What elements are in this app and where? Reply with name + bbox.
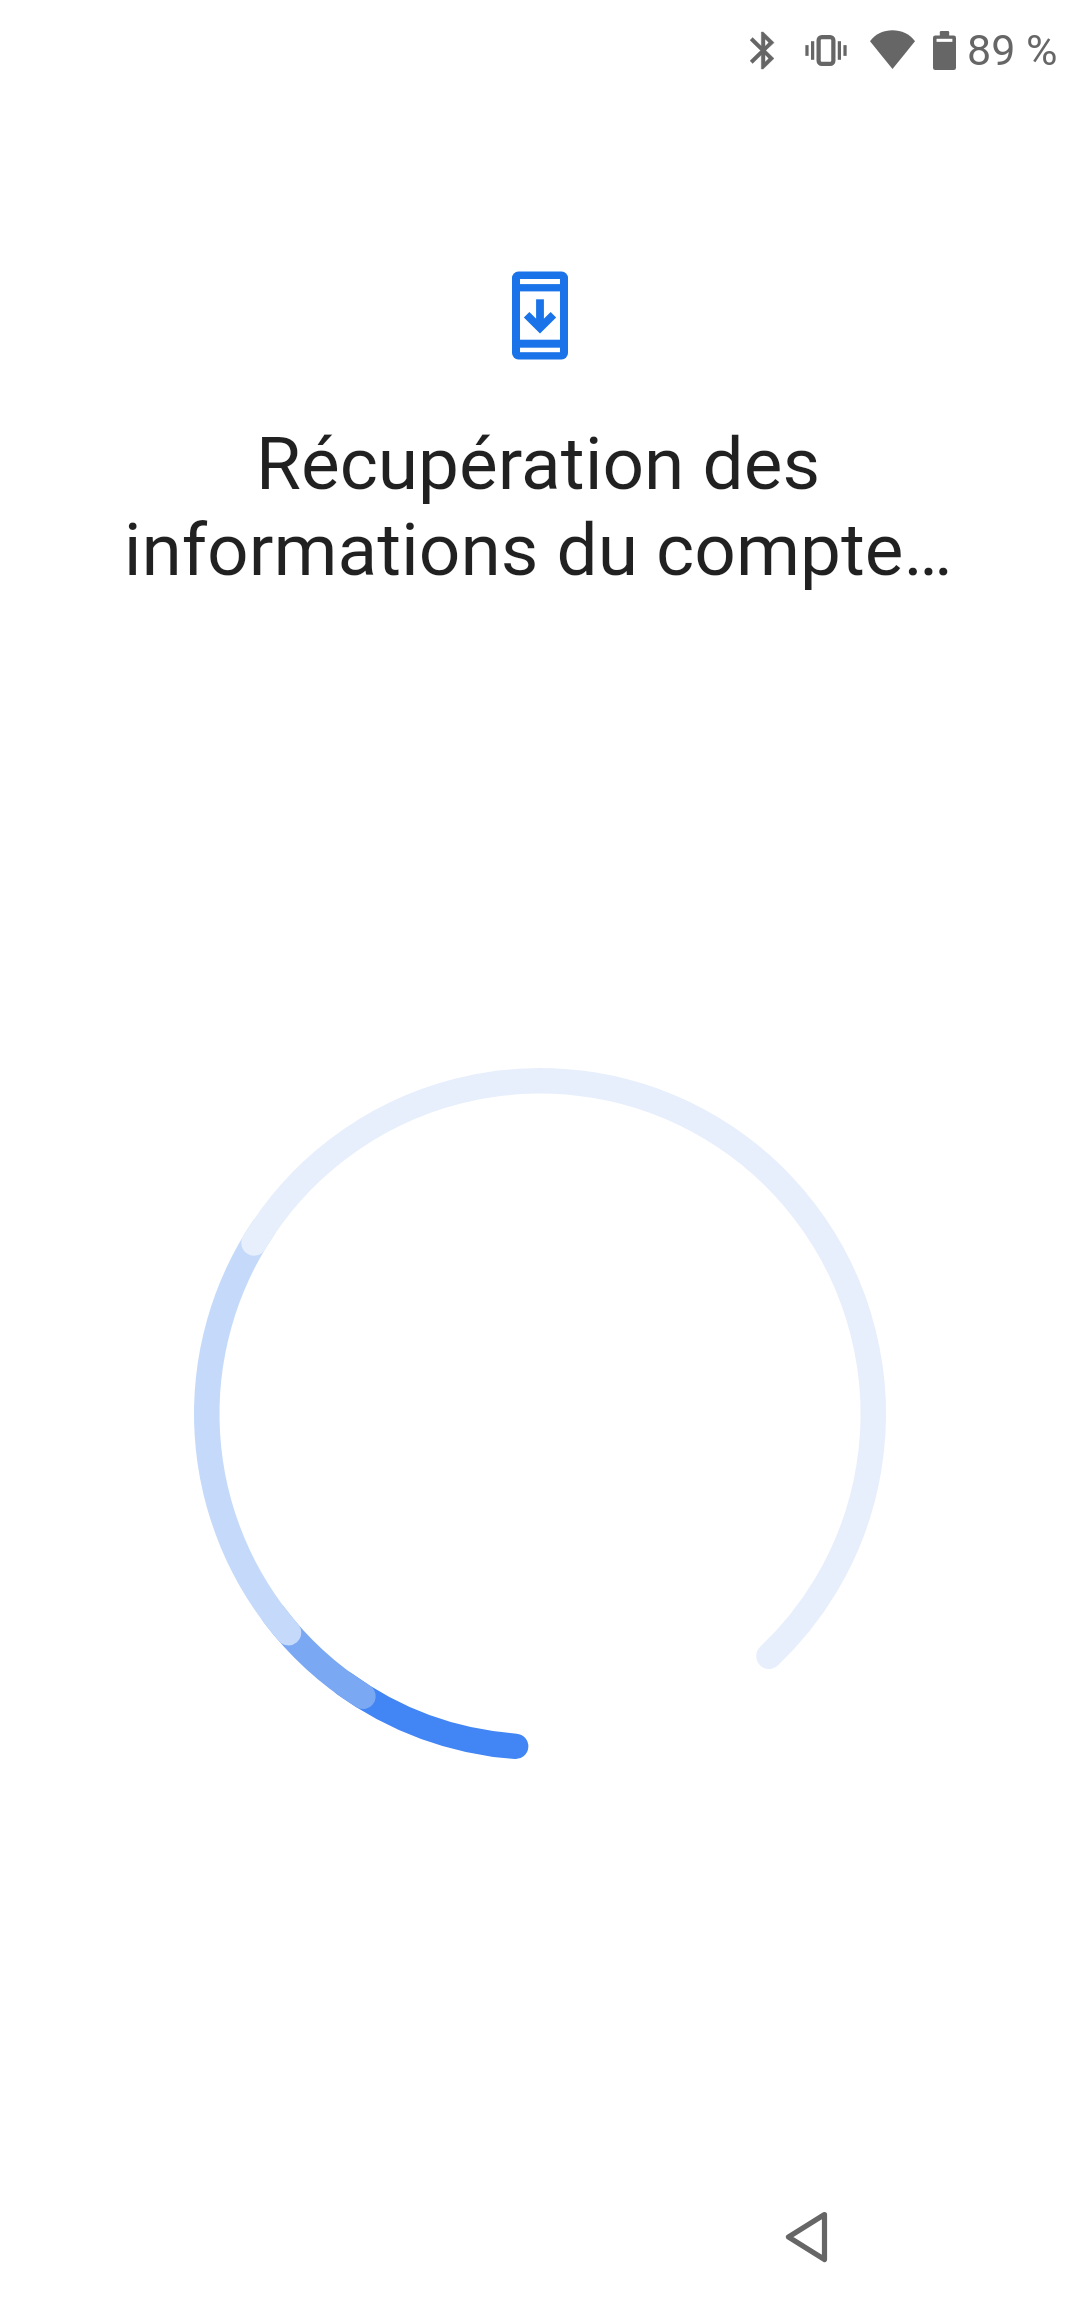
staticText: 89 % bbox=[967, 25, 1058, 75]
staticText: Récupération des informations du compte… bbox=[58, 421, 1018, 593]
button[interactable]: Back bbox=[736, 2167, 876, 2307]
